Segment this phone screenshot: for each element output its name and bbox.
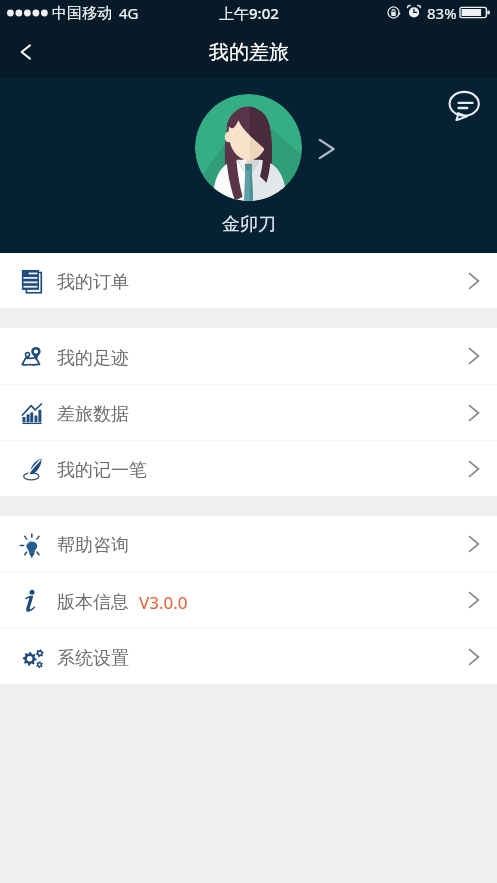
button[interactable]: Back	[0, 26, 52, 78]
button[interactable]: 系统设置	[0, 629, 497, 684]
staticText: 系统设置	[57, 647, 129, 670]
button[interactable]: Profile detail	[306, 130, 344, 168]
staticText: 我的足迹	[57, 347, 129, 370]
button[interactable]	[195, 94, 302, 201]
button[interactable]: 我的订单	[0, 253, 497, 308]
button[interactable]: Messages	[444, 88, 484, 124]
staticText: 我的记一笔	[57, 459, 147, 482]
staticText: 83%	[427, 3, 457, 23]
staticText: 差旅数据	[57, 403, 129, 426]
staticText: 我的订单	[57, 271, 129, 294]
staticText: 中国移动	[52, 4, 112, 23]
staticText: 上午9:02	[219, 3, 279, 23]
staticText: V3.0.0	[139, 591, 188, 614]
staticText: 4G	[119, 3, 139, 23]
staticText: 我的差旅	[209, 40, 289, 65]
staticText: 金卯刀	[222, 213, 276, 236]
staticText: 版本信息	[57, 591, 129, 614]
button[interactable]: 我的足迹	[0, 328, 497, 384]
button[interactable]: 差旅数据	[0, 385, 497, 440]
button[interactable]: 我的记一笔	[0, 441, 497, 496]
button[interactable]: 版本信息	[0, 572, 497, 628]
button[interactable]: 帮助咨询	[0, 516, 497, 571]
staticText: 帮助咨询	[57, 534, 129, 557]
